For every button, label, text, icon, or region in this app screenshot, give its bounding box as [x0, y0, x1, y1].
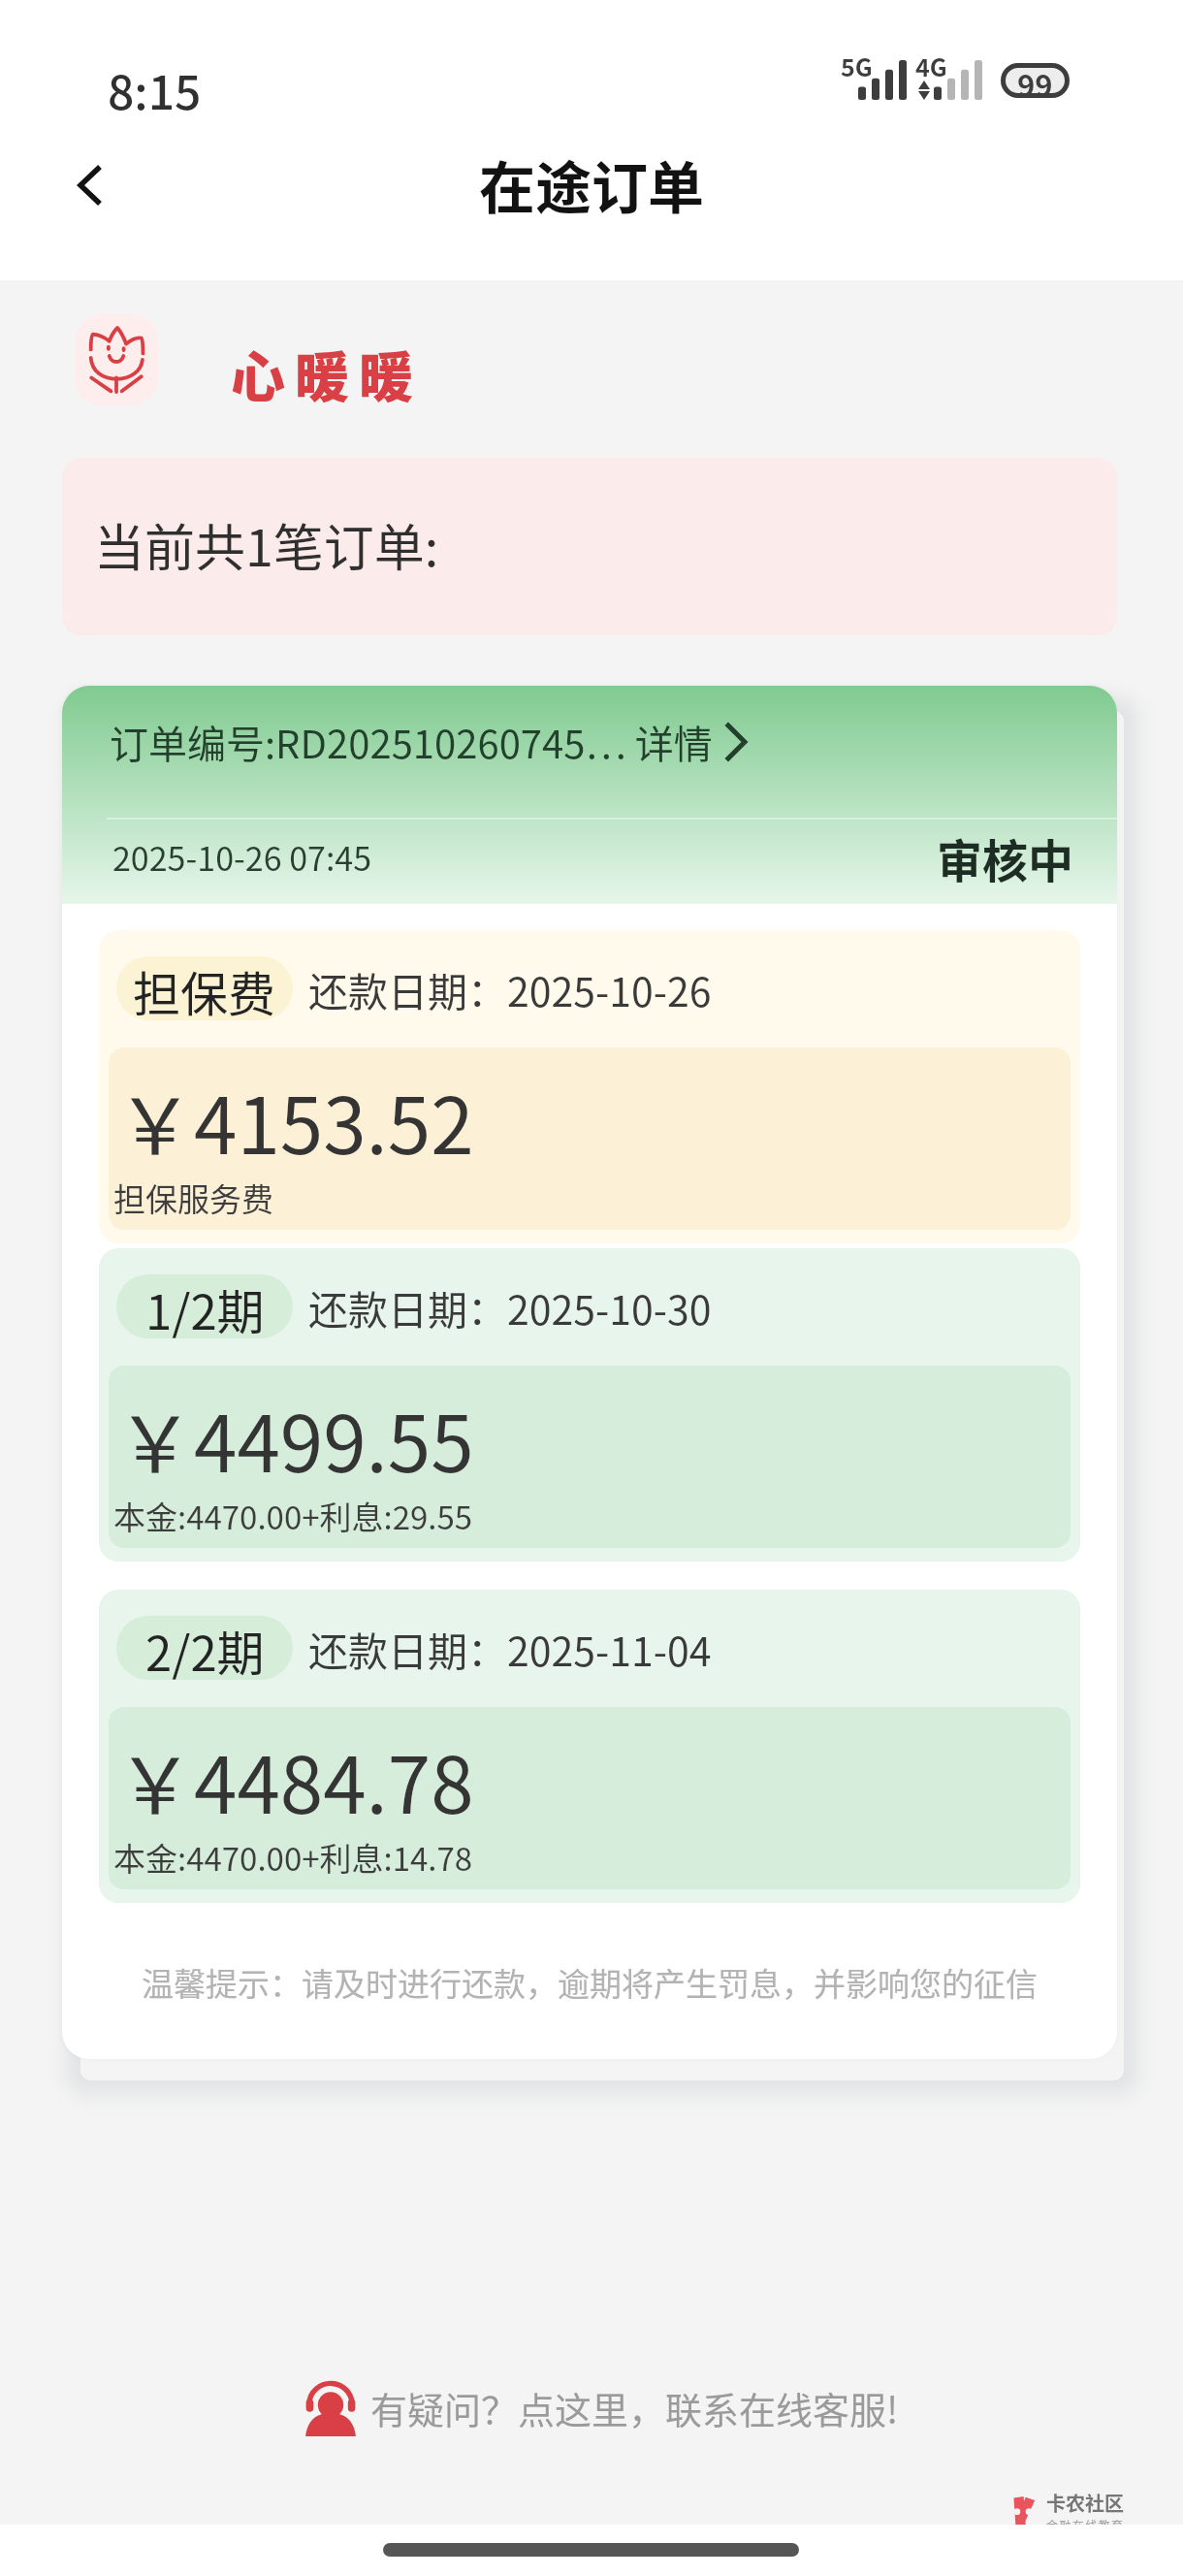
staticText: 1/2期 [145, 1274, 265, 1338]
staticText: 2025-10-26 07:45 [112, 833, 372, 881]
staticText: 在途订单 [479, 144, 705, 225]
staticText: 担保服务费 [113, 1175, 273, 1221]
staticText: 4G [915, 48, 947, 83]
staticText: 本金:4470.00+利息:29.55 [113, 1493, 473, 1539]
staticText: ￥4484.78 [116, 1723, 474, 1836]
staticText: 订单编号:RD202510260745… 详情 [110, 714, 713, 770]
staticText: 心暖暖 [226, 334, 418, 412]
button[interactable]: 有疑问？点这里，联系在线客服! [304, 2378, 899, 2436]
button[interactable]: 当前共1笔订单: [62, 458, 1117, 635]
staticText: 99 [1017, 62, 1053, 106]
button[interactable]: 担保费 [99, 930, 1080, 1243]
staticText: 审核中 [937, 824, 1073, 890]
staticText: 2/2期 [145, 1616, 265, 1680]
staticText: 5G [841, 48, 873, 83]
button[interactable]: 1/2期 [99, 1248, 1080, 1562]
button[interactable]: 2/2期 [99, 1590, 1080, 1903]
staticText: 有疑问？点这里，联系在线客服! [370, 2381, 899, 2434]
staticText: ￥4499.55 [116, 1382, 474, 1495]
staticText: 8:15 [108, 55, 202, 123]
staticText: ￥4153.52 [116, 1064, 474, 1176]
staticText: 本金:4470.00+利息:14.78 [113, 1834, 473, 1881]
staticText: 当前共1笔订单: [94, 508, 439, 581]
staticText: 卡农社区 [1046, 2489, 1124, 2517]
staticText: 还款日期：2025-10-26 [308, 960, 712, 1017]
staticText: 还款日期：2025-11-04 [308, 1620, 712, 1677]
staticText: 温馨提示：请及时进行还款，逾期将产生罚息，并影响您的征信 [62, 1959, 1117, 2006]
button[interactable]: Back [48, 145, 129, 226]
button[interactable]: 订单编号:RD202510260745… 详情 [62, 686, 1117, 904]
staticText: 还款日期：2025-10-30 [308, 1278, 712, 1336]
staticText: 金融在线教育 [1046, 2517, 1125, 2533]
staticText: 担保费 [133, 956, 276, 1020]
